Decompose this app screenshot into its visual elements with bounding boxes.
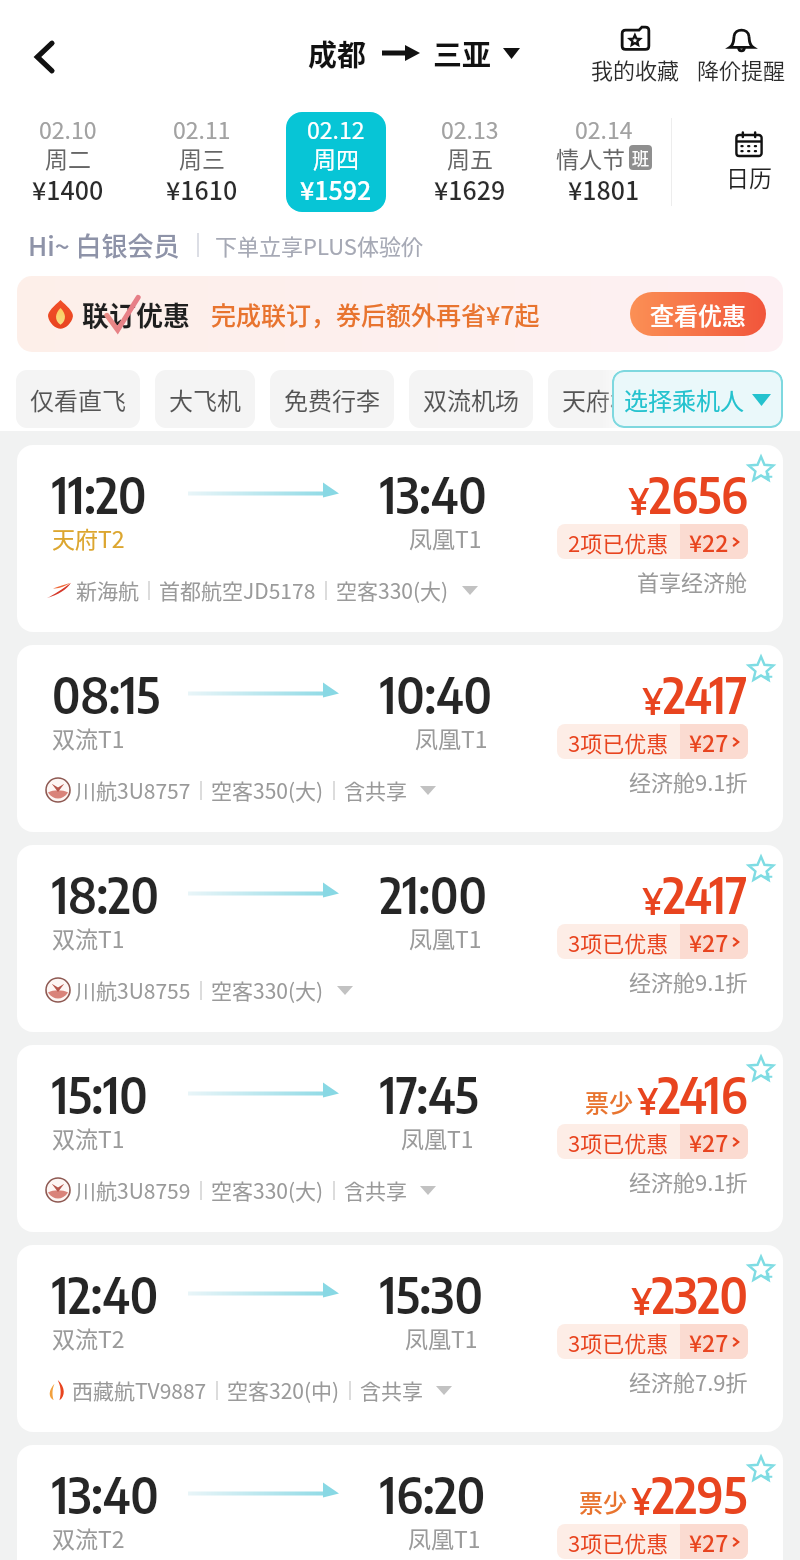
staticText: 三亚 [433,32,492,74]
staticText: 双流T1 [52,1121,125,1154]
button[interactable]: Favourite [743,1051,779,1087]
staticText: 川航3U8759 [75,1175,191,1205]
staticText: 3项已优惠 [568,1126,669,1158]
staticText: 2295 [652,1462,748,1525]
staticText: ¥ [643,879,663,923]
staticText: 2417 [663,862,748,925]
staticText: 3项已优惠 [568,1326,669,1358]
staticText: ¥27 [689,1525,729,1558]
button[interactable]: 降价提醒 [695,26,788,85]
button[interactable]: Favourite [743,1451,779,1487]
staticText: 2416 [658,1062,748,1125]
staticText: 13:40 [380,462,487,525]
staticText: 空客330(大) [211,1175,324,1205]
staticText: 周四 [313,141,359,174]
button[interactable]: Hi~ 白银会员 [28,226,423,264]
button[interactable]: Favourite [743,451,779,487]
staticText: ¥1400 [32,171,104,205]
button[interactable]: 选择乘机人 [612,370,783,428]
staticText: ¥1801 [568,171,640,205]
button[interactable]: 3项已优惠 [557,1524,748,1559]
button[interactable]: 2项已优惠 [557,524,748,559]
button[interactable]: 3项已优惠 [557,924,748,959]
staticText: 13:40 [52,1462,159,1525]
staticText: ¥ [638,1079,658,1123]
button[interactable]: 02.13 [420,112,520,212]
staticText: 天府T2 [52,521,125,554]
staticText: 凤凰T1 [408,1521,481,1554]
button[interactable]: 天府机场 [548,370,672,428]
button[interactable]: 仅看直飞 [16,370,140,428]
button[interactable]: 查看优惠 [630,292,766,336]
button[interactable]: 双流机场 [409,370,533,428]
staticText: 周三 [179,141,225,174]
staticText: ¥ [629,479,649,523]
staticText: 15:10 [52,1062,148,1125]
button[interactable]: 08:15 [17,645,783,832]
staticText: 新海航 [76,575,139,605]
staticText: 2320 [652,1262,748,1325]
staticText: 票少 [585,1084,633,1119]
staticText: 天府机场 [562,382,658,417]
staticText: 02.10 [39,112,97,145]
staticText: 凤凰T1 [401,1121,474,1154]
button[interactable]: 我的收藏 [589,26,682,85]
staticText: 02.12 [307,112,365,145]
button[interactable]: Back [16,29,72,85]
staticText: 双流机场 [423,382,519,417]
staticText: 周二 [45,141,91,174]
button[interactable]: 联订优惠 [17,276,783,352]
staticText: 含共享 [344,775,407,805]
staticText: 完成联订，券后额外再省¥7起 [211,296,540,332]
staticText: ¥ [643,679,663,723]
button[interactable]: 大飞机 [155,370,255,428]
button[interactable]: 02.12 [286,112,386,212]
button[interactable]: 日历 [672,107,800,217]
staticText: 12:40 [52,1262,159,1325]
staticText: 16:20 [380,1462,486,1525]
staticText: ¥27 [689,725,729,758]
button[interactable]: 18:20 [17,845,783,1032]
button[interactable]: 13:40 [17,1445,783,1560]
staticText: 空客320(中) [227,1375,340,1405]
staticText: 下单立享PLUS体验价 [215,229,423,261]
staticText: 双流T2 [52,1321,125,1354]
button[interactable]: 3项已优惠 [557,724,748,759]
staticText: 周五 [447,141,493,174]
button[interactable]: 3项已优惠 [557,1324,748,1359]
staticText: 双流T2 [52,1521,125,1554]
button[interactable]: 15:10 [17,1045,783,1232]
staticText: 11:20 [52,462,147,525]
button[interactable]: Favourite [743,651,779,687]
staticText: 经济舱7.9折 [629,1365,748,1397]
staticText: ¥1610 [166,171,238,205]
button[interactable]: 11:20 [17,445,783,632]
staticText: 含共享 [360,1375,423,1405]
staticText: 3项已优惠 [568,926,669,958]
button[interactable]: 02.14 [554,112,654,212]
button[interactable]: 02.11 [152,112,252,212]
staticText: 凤凰T1 [409,921,482,954]
staticText: Hi~ 白银会员 [28,226,180,264]
staticText: 大飞机 [169,382,241,417]
button[interactable]: 免费行李 [270,370,394,428]
staticText: 查看优惠 [650,297,746,332]
staticText: 西藏航TV9887 [72,1375,207,1405]
button[interactable]: 12:40 [17,1245,783,1432]
button[interactable]: 成都 [308,32,520,74]
staticText: ¥1629 [434,171,506,205]
staticText: 02.13 [441,112,499,145]
staticText: 2656 [649,462,748,525]
staticText: 仅看直飞 [30,382,126,417]
button[interactable]: Favourite [743,1251,779,1287]
button[interactable]: 3项已优惠 [557,1124,748,1159]
staticText: 经济舱9.1折 [629,965,748,997]
staticText: ¥22 [689,525,729,558]
staticText: 日历 [726,160,772,193]
staticText: 17:45 [380,1062,479,1125]
staticText: 双流T1 [52,921,125,954]
staticText: ¥27 [689,1325,729,1358]
staticText: 选择乘机人 [624,382,744,417]
button[interactable]: Favourite [743,851,779,887]
button[interactable]: 02.10 [17,112,118,212]
